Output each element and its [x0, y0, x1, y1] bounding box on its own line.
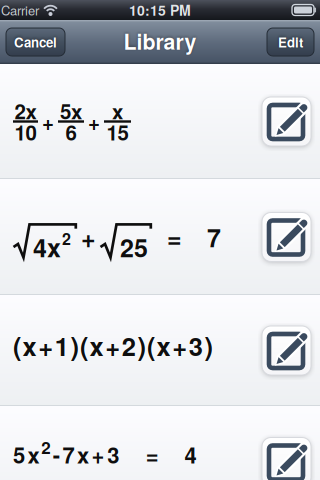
staticText: Library [123, 26, 196, 56]
staticText: 7 [62, 439, 74, 470]
button[interactable]: Open equation [0, 64, 320, 179]
staticText: 4x [33, 229, 61, 265]
staticText: = [146, 439, 159, 470]
button[interactable]: Edit equation [262, 326, 311, 375]
staticText: (x+1)(x+2)(x+3) [13, 327, 212, 364]
staticText: x [112, 96, 123, 125]
staticText: Edit [278, 32, 303, 51]
staticText: 10 [14, 117, 36, 147]
staticText: 15 [106, 117, 128, 147]
button[interactable]: Open equation [0, 406, 320, 480]
button[interactable]: Edit [267, 28, 314, 56]
staticText: 5 [13, 439, 25, 470]
staticText: + [88, 107, 100, 136]
staticText: 4 [184, 439, 196, 470]
staticText: x [77, 439, 89, 470]
staticText: x [28, 439, 40, 470]
staticText: 6 [65, 117, 76, 147]
staticText: 7 [207, 219, 221, 255]
staticText: 2 [41, 435, 50, 459]
staticText: 3 [107, 439, 119, 470]
staticText: 25 [120, 229, 148, 265]
button[interactable]: Open equation [0, 295, 320, 406]
button[interactable]: Open equation [0, 179, 320, 295]
staticText: Cancel [14, 32, 57, 51]
staticText: 10:15 PM [129, 0, 191, 20]
staticText: = [167, 219, 182, 255]
staticText: + [42, 107, 54, 136]
staticText: 5x [60, 96, 82, 125]
staticText: + [81, 219, 96, 255]
staticText: 2 [62, 227, 71, 250]
staticText: 2x [14, 96, 36, 125]
staticText: + [92, 439, 105, 470]
button[interactable]: Cancel [6, 28, 65, 56]
button[interactable]: Edit equation [262, 97, 311, 146]
button[interactable]: Edit equation [262, 437, 311, 480]
staticText: Carrier [1, 1, 39, 19]
staticText: - [53, 439, 60, 470]
button[interactable]: Edit equation [262, 212, 311, 261]
